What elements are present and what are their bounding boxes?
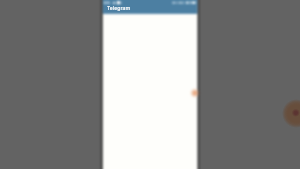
staticText: Telegram [107,5,131,12]
button[interactable]: New message [190,88,200,98]
button[interactable]: Telegram [103,0,197,14]
